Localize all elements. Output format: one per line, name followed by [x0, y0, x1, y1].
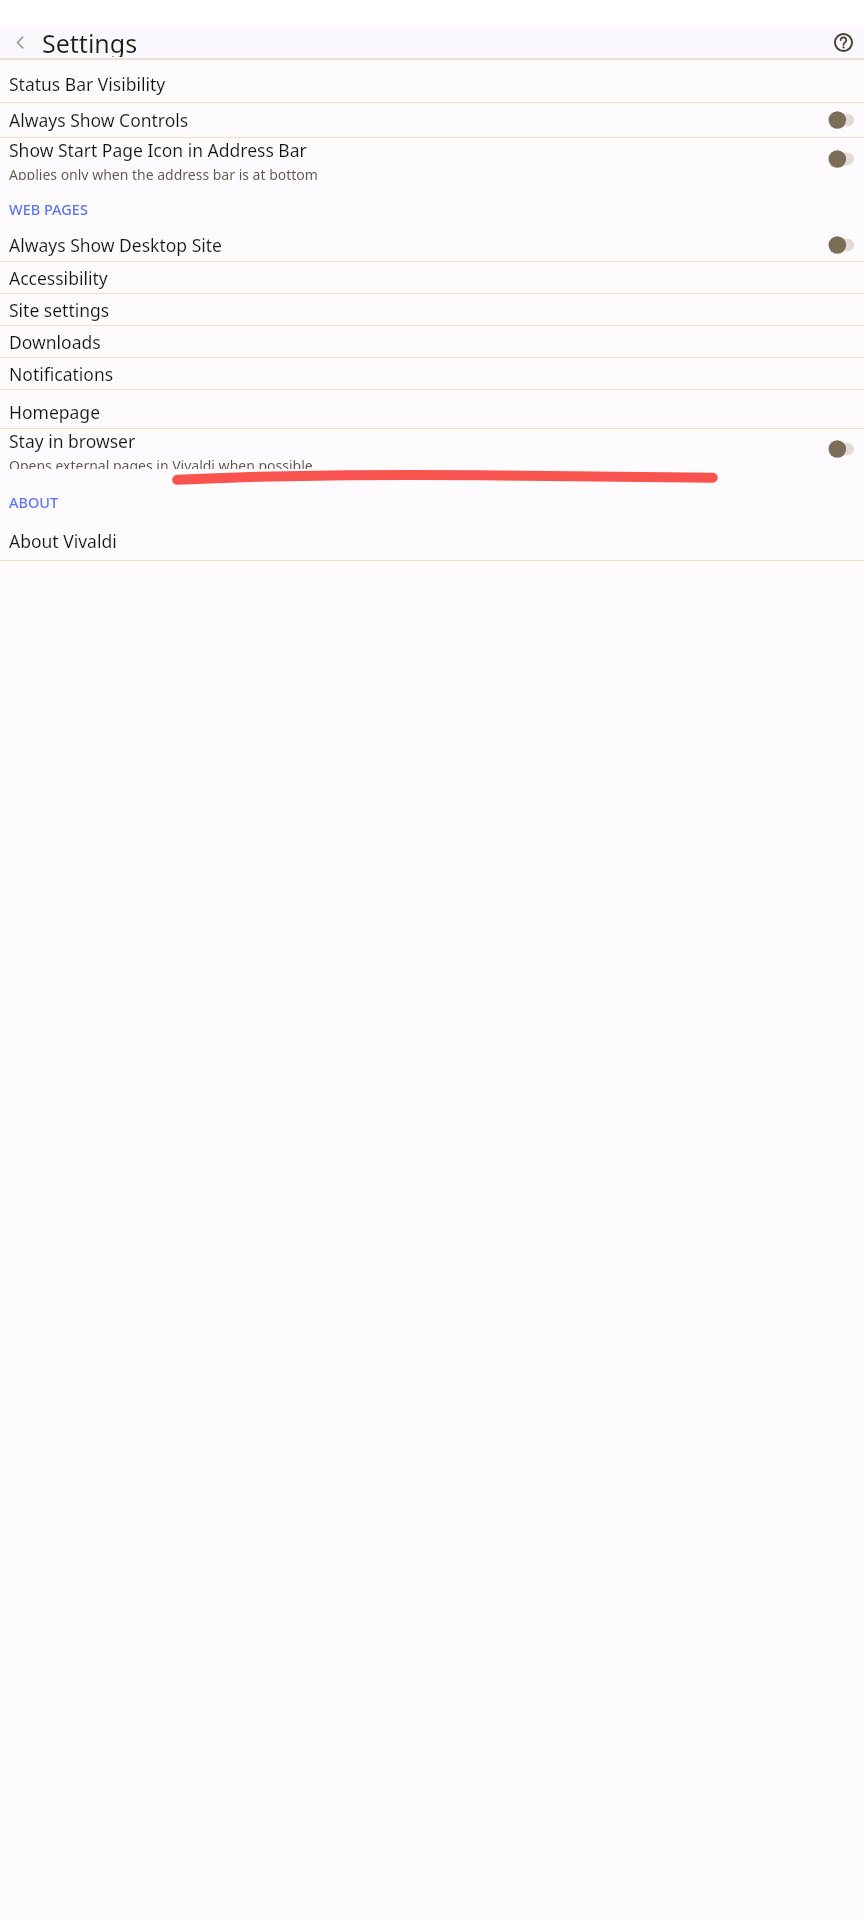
- staticText: Settings: [42, 26, 138, 57]
- button[interactable]: Accessibility: [0, 262, 864, 293]
- staticText: WEB PAGES: [9, 199, 88, 219]
- staticText: Stay in browser: [9, 429, 136, 453]
- staticText: ABOUT: [9, 492, 59, 512]
- staticText: Applies only when the address bar is at …: [9, 165, 318, 180]
- staticText: Status Bar Visibility: [9, 72, 166, 96]
- button[interactable]: Back: [4, 26, 36, 58]
- staticText: About Vivaldi: [9, 529, 117, 553]
- button[interactable]: Toggle: [828, 235, 854, 255]
- button[interactable]: Downloads: [0, 326, 864, 357]
- button[interactable]: Always Show Desktop Site: [0, 229, 864, 261]
- button[interactable]: Toggle: [828, 149, 854, 169]
- staticText: Always Show Desktop Site: [9, 233, 222, 257]
- button[interactable]: Always Show Controls: [0, 103, 864, 137]
- staticText: Downloads: [9, 330, 101, 354]
- button[interactable]: Homepage: [0, 390, 864, 428]
- staticText: Notifications: [9, 362, 114, 386]
- button[interactable]: About Vivaldi: [0, 522, 864, 560]
- button[interactable]: Show Start Page Icon in Address Bar: [0, 138, 864, 180]
- button[interactable]: Stay in browser: [0, 429, 864, 485]
- button[interactable]: Toggle: [828, 110, 854, 130]
- button[interactable]: Site settings: [0, 294, 864, 325]
- staticText: Site settings: [9, 298, 110, 322]
- button[interactable]: Help: [827, 26, 859, 58]
- staticText: Accessibility: [9, 266, 108, 290]
- button[interactable]: Notifications: [0, 358, 864, 389]
- button[interactable]: Status Bar Visibility: [0, 60, 864, 102]
- staticText: Homepage: [9, 400, 100, 424]
- staticText: Always Show Controls: [9, 108, 189, 132]
- staticText: Opens external pages in Vivaldi when pos…: [9, 456, 313, 469]
- staticText: Show Start Page Icon in Address Bar: [9, 138, 307, 162]
- button[interactable]: Toggle: [828, 439, 854, 459]
